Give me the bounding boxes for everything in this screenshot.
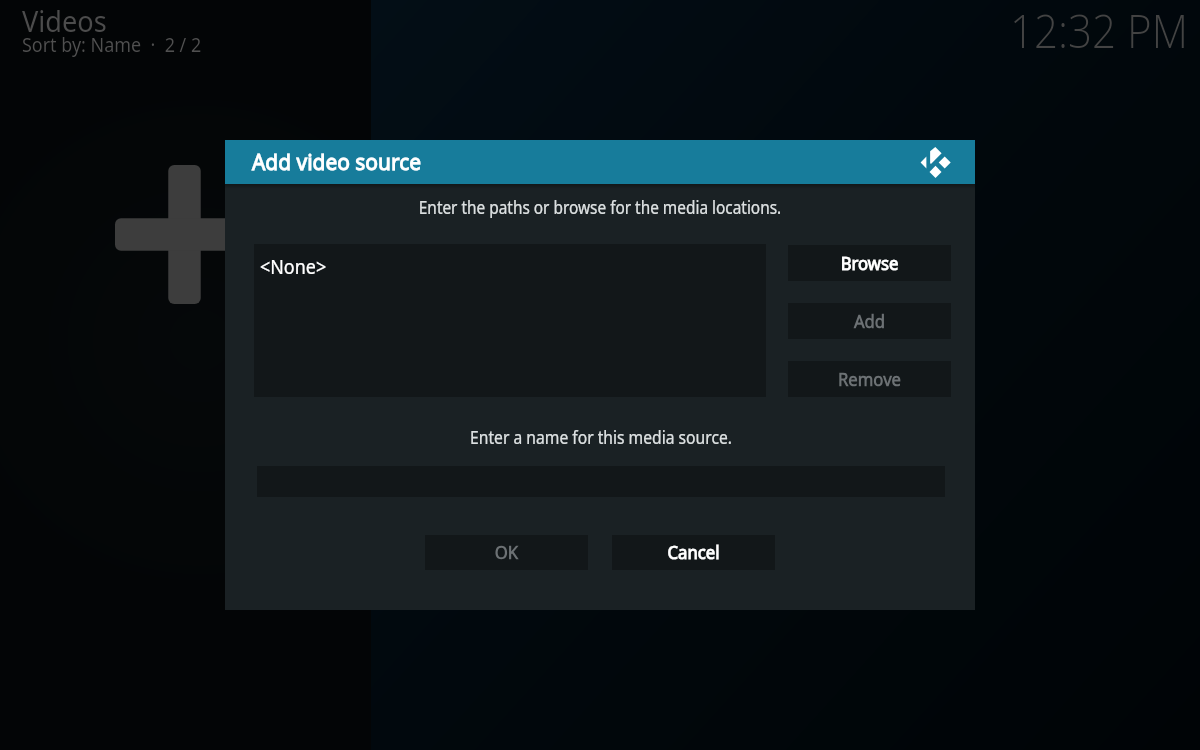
button[interactable]: Add [788, 303, 951, 339]
staticText: Browse [791, 251, 948, 275]
staticText: Add video source [252, 146, 421, 177]
button[interactable]: Remove [788, 361, 951, 397]
staticText: Sort by: Name · 2 / 2 [22, 32, 201, 58]
staticText: Enter the paths or browse for the media … [288, 196, 911, 220]
button[interactable]: Source paths [254, 244, 766, 397]
staticText: Remove [791, 367, 948, 391]
other: Kodi [920, 147, 951, 178]
button[interactable]: Browse [788, 245, 951, 281]
staticText: 12:32 PM [803, 0, 1188, 62]
staticText: Cancel [615, 540, 772, 564]
staticText: Enter a name for this media source. [284, 426, 918, 450]
staticText: OK [428, 540, 585, 564]
button[interactable]: Cancel [612, 535, 775, 570]
staticText: Videos [22, 1, 107, 40]
staticText: <None> [260, 254, 327, 280]
staticText: Add [791, 309, 948, 333]
button[interactable]: OK [425, 535, 588, 570]
